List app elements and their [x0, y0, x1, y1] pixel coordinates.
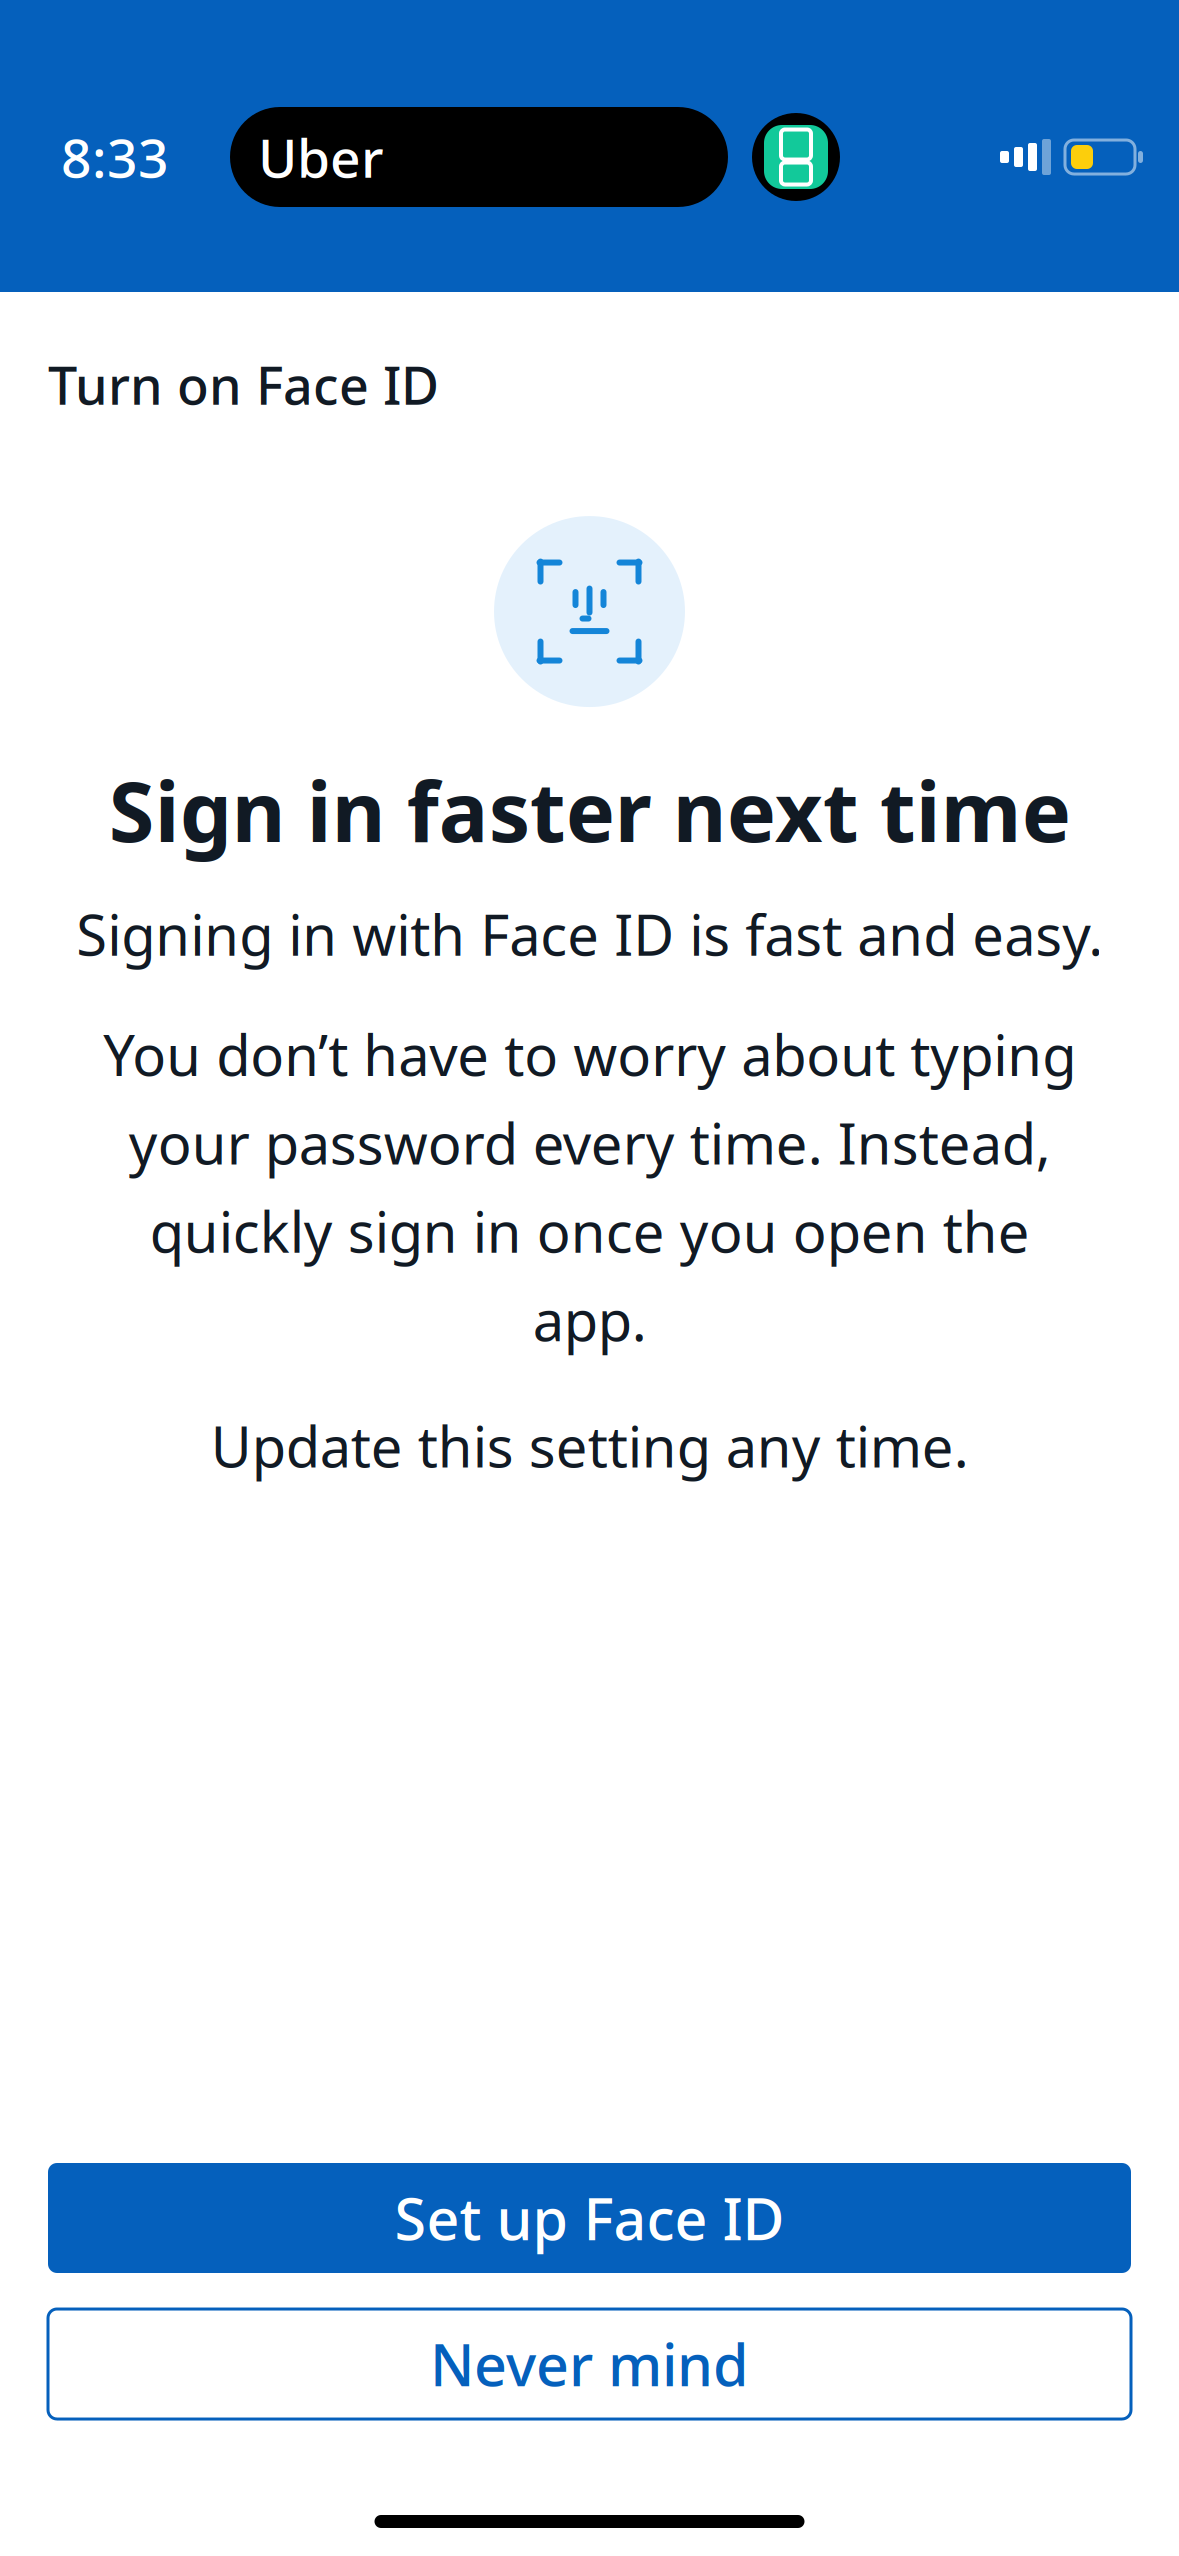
- staticText: Turn on Face ID: [48, 350, 439, 419]
- staticText: Sign in faster next time: [108, 755, 1070, 865]
- staticText: You don’t have to worry about typing you…: [103, 1017, 1076, 1357]
- staticText: Update this setting any time.: [210, 1409, 968, 1483]
- staticText: Uber: [258, 122, 384, 192]
- staticText: Set up Face ID: [394, 2180, 784, 2256]
- button[interactable]: Set up Face ID: [48, 2163, 1131, 2273]
- button[interactable]: Never mind: [48, 2309, 1131, 2419]
- staticText: Never mind: [430, 2326, 749, 2402]
- staticText: Signing in with Face ID is fast and easy…: [76, 897, 1103, 971]
- staticText: 8:33: [61, 122, 169, 192]
